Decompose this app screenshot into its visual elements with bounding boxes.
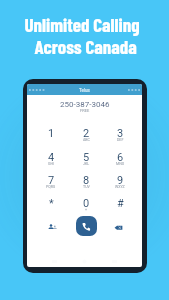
button[interactable]: 4 <box>40 151 62 171</box>
button[interactable]: 8 <box>75 174 97 194</box>
button[interactable]: 6 <box>109 151 131 171</box>
staticText: Unlimited Calling <box>24 13 140 36</box>
staticText: FREE <box>80 108 90 113</box>
staticText: * <box>49 197 54 210</box>
button[interactable]: 2 <box>75 127 97 147</box>
staticText: Across Canada <box>34 35 137 58</box>
staticText: 4 <box>48 151 55 164</box>
staticText: DEF <box>117 138 124 142</box>
staticText: ABC <box>83 138 90 142</box>
staticText: Telus <box>79 88 90 93</box>
staticText: MNO <box>116 162 125 166</box>
staticText: 3 <box>117 127 124 140</box>
staticText: 7 <box>48 174 55 187</box>
staticText: 6 <box>117 151 124 164</box>
staticText: 0 <box>83 197 90 210</box>
button[interactable]: 5 <box>75 151 97 171</box>
staticText: 8 <box>83 174 90 187</box>
staticText: # <box>117 197 124 210</box>
staticText: 1 <box>48 127 55 140</box>
staticText: 9 <box>117 174 124 187</box>
staticText: + <box>85 208 88 212</box>
button[interactable]: 1 <box>40 127 62 147</box>
staticText: 5 <box>83 151 90 164</box>
button[interactable]: Call <box>76 216 97 236</box>
staticText: WXYZ <box>115 185 125 189</box>
staticText: 2 <box>83 127 90 140</box>
button[interactable]: 9 <box>109 174 131 194</box>
button[interactable]: 3 <box>109 127 131 147</box>
staticText: 250-387-3046 <box>60 100 110 109</box>
button[interactable]: * <box>40 197 62 217</box>
button[interactable]: Backspace <box>107 216 129 238</box>
staticText: PQRS <box>46 185 56 189</box>
staticText: GHI <box>48 162 54 166</box>
button[interactable]: Add contact <box>41 216 63 238</box>
staticText: TUV <box>83 185 90 189</box>
staticText: JKL <box>83 162 90 166</box>
button[interactable]: # <box>109 197 131 217</box>
button[interactable]: 7 <box>40 174 62 194</box>
button[interactable]: 0 <box>75 197 97 217</box>
